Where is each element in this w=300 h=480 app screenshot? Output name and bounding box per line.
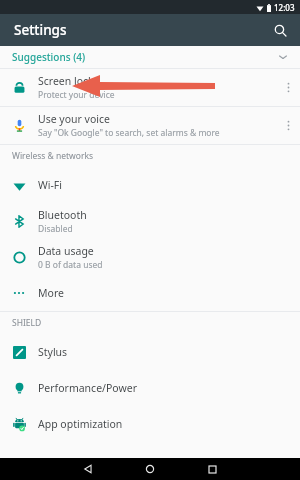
button[interactable]: App optimization (0, 406, 300, 442)
button[interactable]: Recent apps (195, 458, 229, 480)
button[interactable]: Stylus (0, 334, 300, 370)
staticText: Suggestions (4) (12, 50, 86, 64)
button[interactable]: More options (276, 107, 300, 144)
button[interactable]: More (0, 275, 300, 311)
button[interactable]: Wi-Fi (0, 167, 300, 203)
staticText: App optimization (38, 417, 123, 431)
staticText: 12:03 (274, 2, 295, 13)
staticText: 0 B of data used (38, 259, 103, 271)
staticText: Use your voice (38, 112, 110, 126)
staticText: Screen lock (38, 74, 94, 88)
button[interactable]: Suggestions (4) (0, 46, 300, 68)
button[interactable]: Performance/Power (0, 370, 300, 406)
staticText: Stylus (38, 345, 68, 359)
staticText: Performance/Power (38, 381, 137, 395)
staticText: Data usage (38, 244, 94, 258)
button[interactable]: Back (71, 458, 105, 480)
staticText: Wi-Fi (38, 178, 63, 192)
button[interactable]: Search (265, 15, 295, 45)
staticText: Disabled (38, 223, 73, 235)
button[interactable]: More options (276, 69, 300, 106)
staticText: Bluetooth (38, 208, 87, 222)
button[interactable]: Data usage (0, 239, 300, 275)
button[interactable]: Bluetooth (0, 203, 300, 239)
button[interactable]: Home (133, 458, 167, 480)
staticText: SHIELD (12, 317, 42, 329)
staticText: Settings (14, 21, 67, 39)
button[interactable]: Screen lock (0, 69, 300, 106)
staticText: Protect your device (38, 89, 115, 101)
staticText: Wireless & networks (12, 150, 94, 162)
staticText: Say "Ok Google" to search, set alarms & … (38, 127, 220, 139)
button[interactable]: Use your voice (0, 107, 300, 144)
staticText: More (38, 286, 64, 300)
